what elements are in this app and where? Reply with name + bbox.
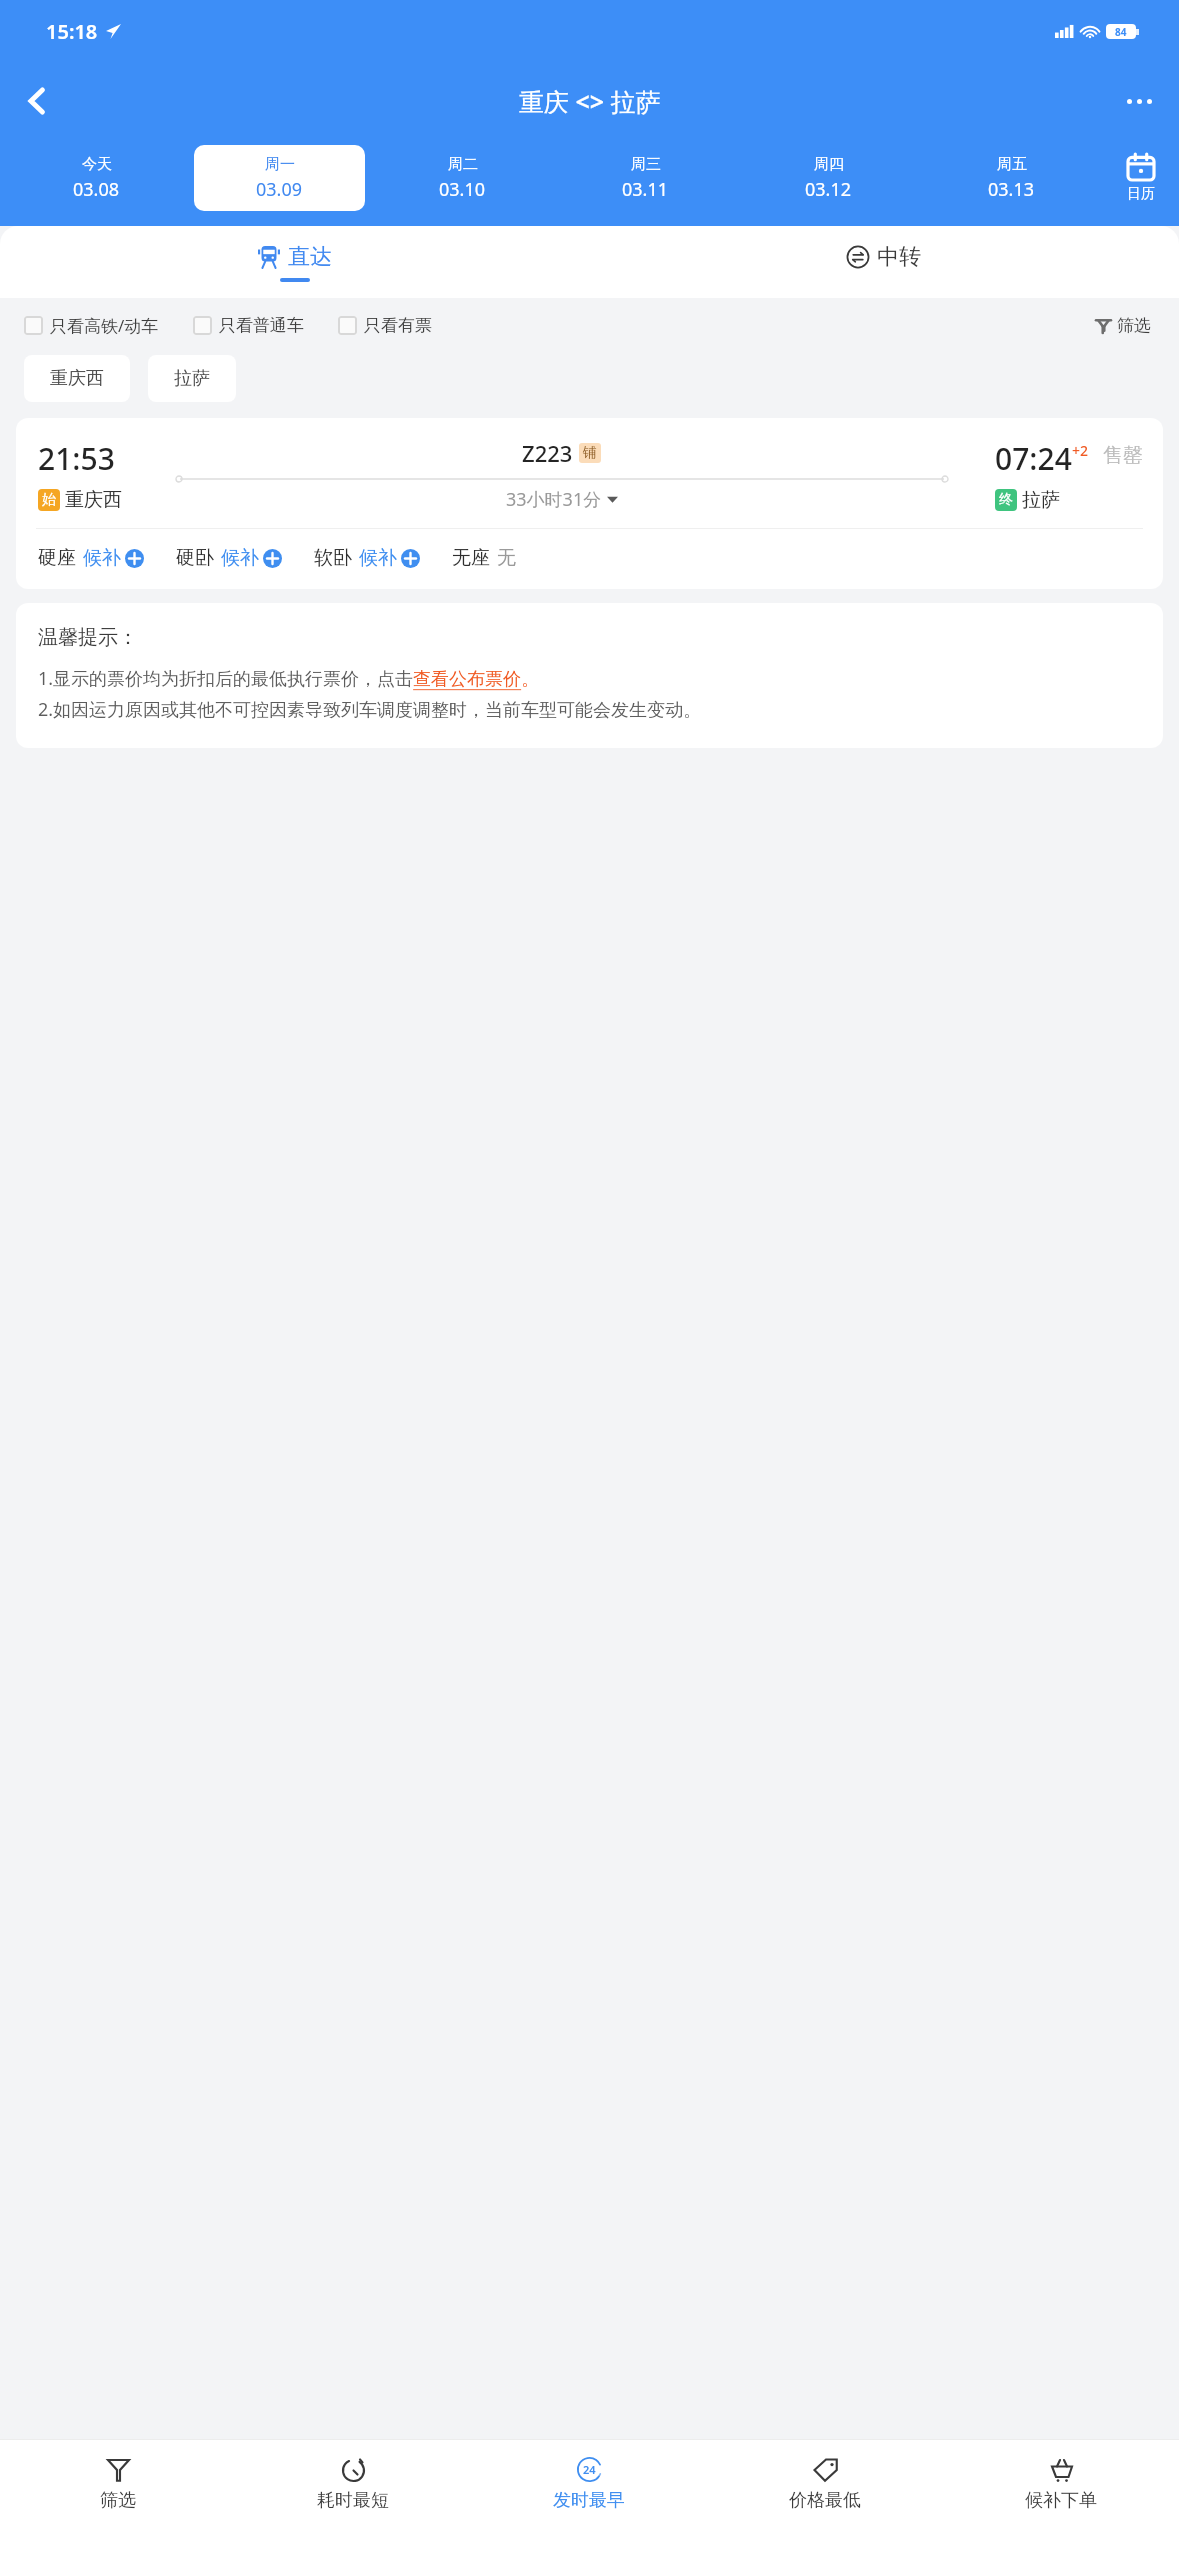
staticText: 无座 xyxy=(452,546,490,570)
button[interactable]: 筛选 xyxy=(0,2440,235,2528)
button[interactable]: 只看高铁/动车 xyxy=(24,310,159,341)
staticText: 03.08 xyxy=(73,177,120,202)
staticText: 直达 xyxy=(288,243,332,271)
staticText: Z223 xyxy=(522,438,573,468)
button[interactable]: 周一 xyxy=(194,145,365,211)
staticText: 候补 xyxy=(221,546,259,570)
staticText: 重庆西 xyxy=(65,488,122,512)
staticText: 筛选 xyxy=(100,2489,136,2512)
button[interactable]: 今天 xyxy=(10,145,182,211)
staticText: 温馨提示： xyxy=(38,625,138,650)
staticText: 周二 xyxy=(448,155,478,174)
staticText: 03.12 xyxy=(805,177,852,202)
staticText: 21:53 xyxy=(38,438,115,479)
staticText: 始 xyxy=(42,491,56,509)
staticText: 候补 xyxy=(83,546,121,570)
staticText: 筛选 xyxy=(1117,315,1151,336)
staticText: 只看高铁/动车 xyxy=(50,314,159,337)
button[interactable]: 筛选 xyxy=(1092,311,1155,340)
staticText: 2.如因运力原因或其他不可控因素导致列车调度调整时，当前车型可能会发生变动。 xyxy=(38,697,702,722)
button[interactable]: 价格最低 xyxy=(707,2440,943,2528)
button[interactable]: 21:53 xyxy=(16,418,1163,589)
button[interactable]: 硬座 xyxy=(38,546,144,570)
staticText: 今天 xyxy=(82,155,112,174)
staticText: 只看有票 xyxy=(364,315,432,336)
button[interactable]: 耗时最短 xyxy=(235,2440,471,2528)
staticText: 价格最低 xyxy=(789,2489,861,2512)
button[interactable]: 候补下单 xyxy=(943,2440,1179,2528)
staticText: 周三 xyxy=(631,155,661,174)
staticText: 发时最早 xyxy=(553,2489,625,2512)
staticText: 耗时最短 xyxy=(317,2489,389,2512)
staticText: 软卧 xyxy=(314,546,352,570)
staticText: 03.09 xyxy=(256,177,303,202)
button[interactable]: Back xyxy=(12,75,64,127)
staticText: 重庆 <> 拉萨 xyxy=(519,84,661,118)
staticText: 84 xyxy=(1115,25,1127,39)
staticText: 周一 xyxy=(265,155,295,174)
button[interactable]: 24 xyxy=(471,2440,707,2528)
staticText: 周五 xyxy=(997,155,1027,174)
staticText: 日历 xyxy=(1127,185,1155,203)
staticText: 拉萨 xyxy=(174,367,210,390)
staticText: 重庆西 xyxy=(50,367,104,390)
staticText: 24 xyxy=(583,2462,596,2477)
staticText: 周四 xyxy=(814,155,844,174)
staticText: 硬座 xyxy=(38,546,76,570)
button[interactable]: 只看有票 xyxy=(338,311,432,340)
staticText: 候补 xyxy=(359,546,397,570)
staticText: 售罄 xyxy=(1103,443,1143,468)
button[interactable]: 只看普通车 xyxy=(193,311,304,340)
staticText: 铺 xyxy=(583,444,597,462)
staticText: 只看普通车 xyxy=(219,315,304,336)
button[interactable]: 直达 xyxy=(0,226,589,298)
button[interactable]: 中转 xyxy=(589,226,1179,298)
staticText: 拉萨 xyxy=(1022,488,1060,512)
staticText: 中转 xyxy=(877,243,921,271)
staticText: 硬卧 xyxy=(176,546,214,570)
staticText: 07:24 xyxy=(995,438,1072,479)
button[interactable]: 周四 xyxy=(743,145,914,211)
staticText: 03.13 xyxy=(988,177,1035,202)
staticText: +2 xyxy=(1072,441,1089,460)
button[interactable]: 重庆西 xyxy=(24,355,130,402)
button[interactable]: More options xyxy=(1113,75,1165,127)
button[interactable]: 拉萨 xyxy=(148,355,236,402)
staticText: 终 xyxy=(999,491,1013,509)
staticText: 候补下单 xyxy=(1025,2489,1097,2512)
staticText: 无 xyxy=(497,546,516,570)
button[interactable]: 周三 xyxy=(560,145,731,211)
button[interactable]: Calendar xyxy=(1103,140,1179,216)
staticText: 03.10 xyxy=(439,177,486,202)
staticText: 15:18 xyxy=(46,18,98,45)
staticText: 03.11 xyxy=(622,177,669,202)
button[interactable]: 硬卧 xyxy=(176,546,282,570)
staticText: 33小时31分 xyxy=(506,487,602,512)
button[interactable]: 周二 xyxy=(377,145,548,211)
button[interactable]: 周五 xyxy=(926,145,1097,211)
button[interactable]: 1.显示的票价均为折扣后的最低执行票价，点击查看公布票价。 xyxy=(38,666,540,691)
button[interactable]: 软卧 xyxy=(314,546,420,570)
